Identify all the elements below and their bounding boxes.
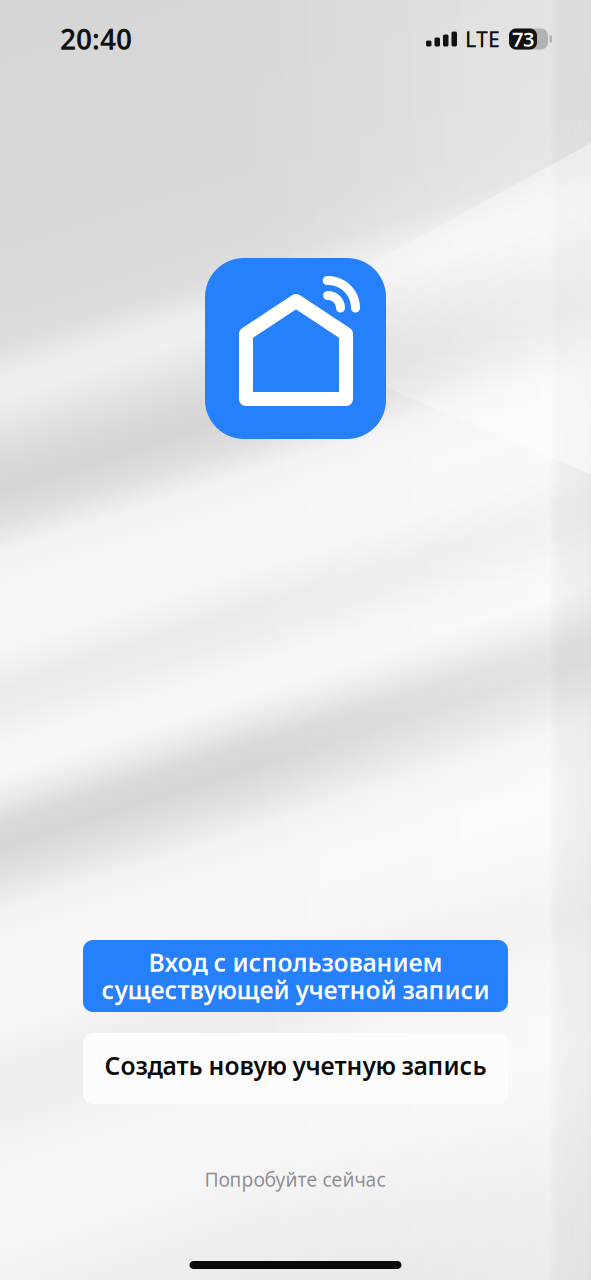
staticText: 20:40	[60, 20, 132, 58]
button[interactable]: Попробуйте сейчас	[204, 1166, 386, 1192]
staticText: Попробуйте сейчас	[204, 1166, 386, 1192]
staticText: существующей учетной записи	[101, 973, 489, 1007]
staticText: Вход с использованием	[148, 945, 442, 979]
staticText: Создать новую учетную запись	[104, 1049, 486, 1082]
button[interactable]: Создать новую учетную запись	[83, 1033, 508, 1104]
button[interactable]: Вход с использованием	[83, 940, 508, 1012]
staticText: 73	[512, 26, 534, 52]
staticText: LTE	[465, 25, 500, 53]
